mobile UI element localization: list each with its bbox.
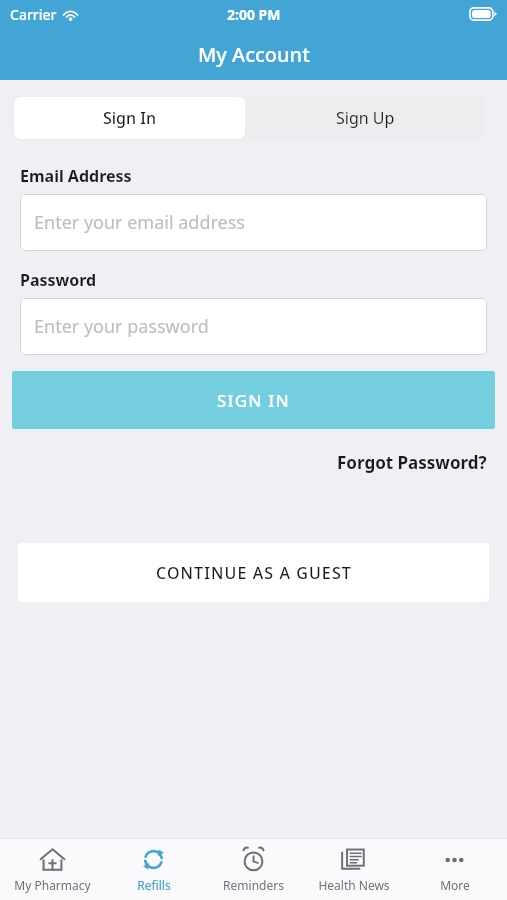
staticText: CONTINUE AS A GUEST [156,562,352,584]
staticText: Health News [318,877,390,893]
button[interactable]: Sign Up [247,95,483,141]
staticText: Sign In [103,107,156,129]
button[interactable]: SIGN IN [12,371,495,429]
button[interactable]: Health News [306,842,401,897]
button[interactable]: CONTINUE AS A GUEST [18,543,489,602]
staticText: Carrier [10,5,57,24]
staticText: Enter your password [34,314,209,339]
button[interactable]: My Pharmacy [5,842,100,897]
staticText: SIGN IN [217,389,290,412]
button[interactable]: Forgot Password? [337,451,487,474]
staticText: More [440,877,470,893]
staticText: Enter your email address [34,210,245,235]
staticText: My Pharmacy [14,877,91,893]
staticText: Reminders [223,877,284,893]
staticText: Refills [137,877,171,893]
staticText: Forgot Password? [337,451,487,474]
button[interactable]: Enter your email address [20,194,487,251]
staticText: Email Address [20,165,132,187]
button[interactable]: Reminders [206,842,301,897]
button[interactable]: Refills [106,842,201,897]
staticText: Password [20,269,97,291]
staticText: My Account [198,41,310,68]
staticText: Sign Up [336,107,395,129]
staticText: 2:00 PM [227,5,281,24]
button[interactable]: More [407,842,502,897]
button[interactable]: Enter your password [20,298,487,355]
button[interactable]: Sign In [14,97,245,139]
